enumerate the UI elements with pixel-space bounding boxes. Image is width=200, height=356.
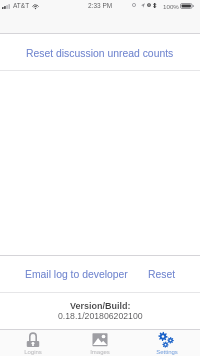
staticText: Email log to developer bbox=[25, 269, 128, 281]
staticText: Reset bbox=[148, 269, 176, 281]
button[interactable]: Images bbox=[66, 330, 133, 356]
staticText: Version/Build: bbox=[70, 301, 131, 311]
staticText: Settings bbox=[156, 349, 178, 356]
staticText: 0.18.1/201806202100 bbox=[58, 311, 143, 321]
staticText: 2:33 PM bbox=[88, 2, 113, 9]
button[interactable]: Logins bbox=[0, 330, 66, 356]
button[interactable]: Settings bbox=[133, 330, 200, 356]
button[interactable]: Reset discussion unread counts bbox=[0, 34, 200, 70]
button[interactable]: Reset bbox=[145, 263, 179, 287]
staticText: Logins bbox=[24, 349, 42, 356]
staticText: AT&T bbox=[13, 2, 30, 9]
button[interactable]: Email log to developer bbox=[22, 263, 131, 287]
staticText: Images bbox=[90, 349, 110, 356]
staticText: 100% bbox=[163, 3, 179, 10]
staticText: Reset discussion unread counts bbox=[26, 48, 174, 60]
